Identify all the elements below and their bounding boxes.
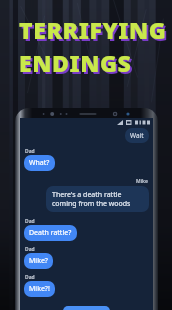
staticText: ENDINGS [19, 47, 132, 78]
staticText: Death rattle? [29, 228, 72, 238]
staticText: Mike [136, 178, 148, 185]
button[interactable]: There's a death rattle coming from the w… [46, 186, 149, 212]
staticText: There's a death rattle coming from the w… [52, 190, 143, 208]
staticText: TERRIFYING [19, 14, 167, 45]
staticText: What? [29, 158, 50, 168]
button[interactable]: What? [24, 155, 55, 171]
staticText: TERRIFYING [21, 16, 169, 47]
button[interactable]: Mike? [24, 253, 53, 269]
staticText: Dad [25, 274, 35, 281]
staticText: Dad [25, 246, 35, 253]
staticText: ENDINGS [21, 49, 134, 80]
staticText: Dad [25, 148, 35, 155]
button[interactable]: Wait [125, 128, 149, 143]
button[interactable]: Death rattle? [24, 225, 77, 241]
button[interactable]: Mike?! [24, 281, 55, 297]
staticText: Wait [130, 131, 144, 140]
staticText: Mike? [29, 256, 48, 266]
staticText: Mike?! [29, 284, 50, 294]
button[interactable]: The End [63, 306, 110, 310]
staticText: Dad [25, 218, 35, 225]
